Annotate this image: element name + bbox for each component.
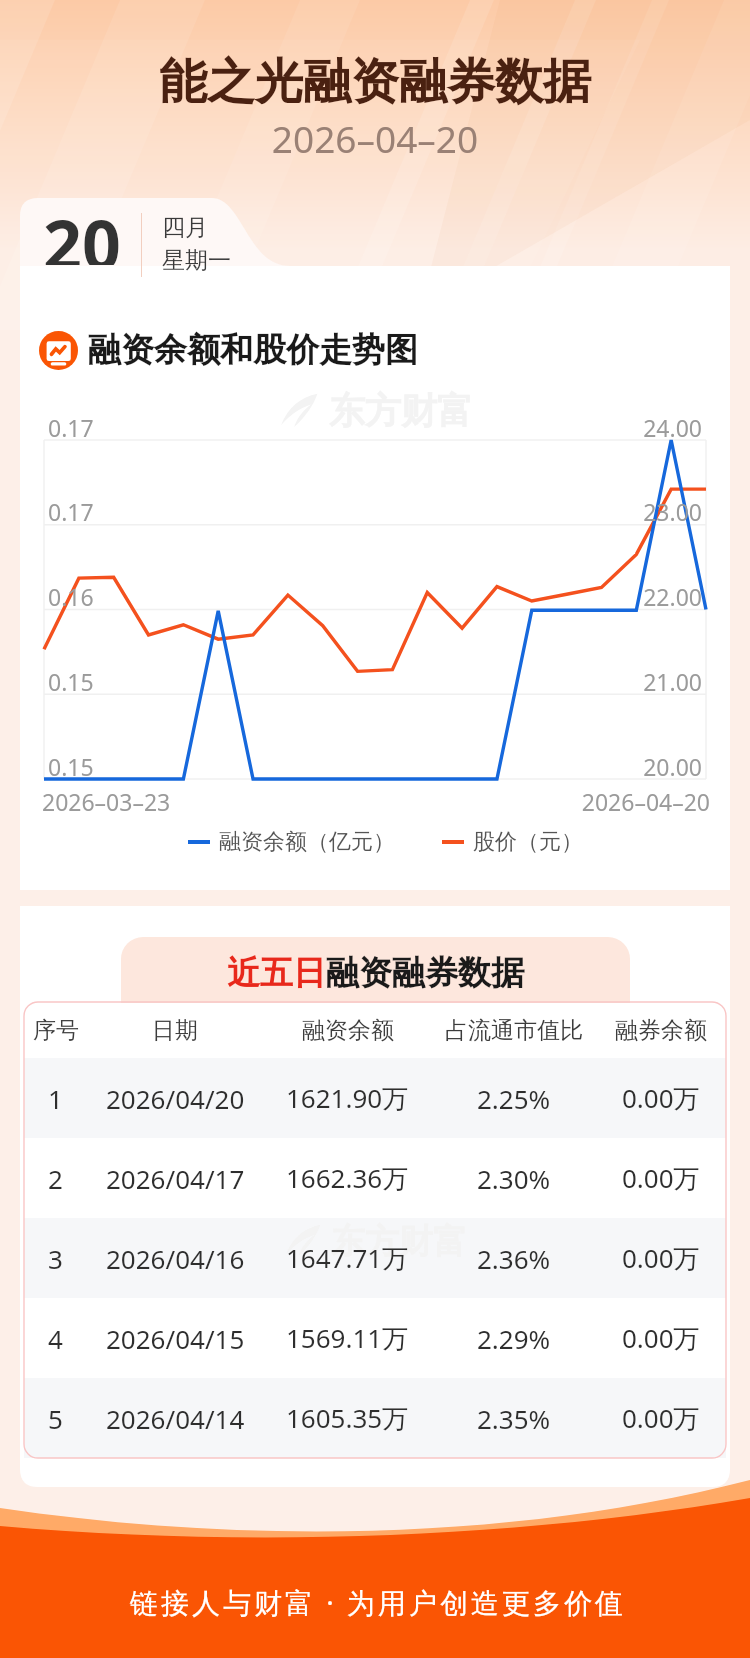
staticText: 1647.71万 <box>286 1240 409 1276</box>
staticText: 2.25% <box>477 1081 551 1116</box>
staticText: 2026/04/17 <box>106 1161 245 1196</box>
staticText: 2.30% <box>477 1161 551 1196</box>
staticText: 2026/04/14 <box>106 1401 245 1436</box>
staticText: 星期一 <box>162 246 231 275</box>
staticText: 0.15 <box>48 666 94 697</box>
staticText: 1569.11万 <box>286 1320 409 1356</box>
staticText: 0.00万 <box>622 1240 700 1276</box>
staticText: 2026/04/16 <box>106 1241 245 1276</box>
staticText: 4 <box>48 1321 63 1356</box>
staticText: 0.17 <box>48 496 94 527</box>
staticText: 融券余额 <box>615 1016 707 1045</box>
staticText: 2.29% <box>477 1321 551 1356</box>
staticText: 5 <box>48 1401 63 1436</box>
staticText: 20 <box>43 197 121 265</box>
staticText: 1605.35万 <box>286 1400 409 1436</box>
staticText: 1 <box>48 1081 63 1116</box>
button[interactable]: 5 <box>24 1378 726 1458</box>
staticText: 东方财富 <box>329 388 473 433</box>
other: 走势图 <box>39 331 78 370</box>
staticText: 1621.90万 <box>286 1080 409 1116</box>
button[interactable]: 1 <box>24 1058 726 1138</box>
button[interactable]: 3 <box>24 1218 726 1298</box>
button[interactable]: 4 <box>24 1298 726 1378</box>
staticText: 四月 <box>162 213 208 242</box>
staticText: 0.00万 <box>622 1160 700 1196</box>
staticText: 2 <box>48 1161 63 1196</box>
staticText: 24.00 <box>570 412 702 443</box>
staticText: 1662.36万 <box>286 1160 409 1196</box>
staticText: 近五日 <box>227 952 326 994</box>
staticText: 股价（元） <box>473 828 583 856</box>
staticText: 东方财富 <box>331 1220 467 1263</box>
button[interactable]: 近五日 <box>0 952 750 994</box>
staticText: 3 <box>48 1241 63 1276</box>
staticText: 2.35% <box>477 1401 551 1436</box>
staticText: 序号 <box>33 1016 79 1045</box>
staticText: 融资余额（亿元） <box>219 828 395 856</box>
staticText: 能之光融资融券数据 <box>0 52 750 112</box>
staticText: 0.15 <box>48 751 94 782</box>
staticText: 2.36% <box>477 1241 551 1276</box>
staticText: 22.00 <box>570 581 702 612</box>
staticText: 融资余额和股价走势图 <box>88 329 418 371</box>
button[interactable]: 2 <box>24 1138 726 1218</box>
staticText: 融资融券数据 <box>326 952 524 994</box>
staticText: 日期 <box>152 1016 198 1045</box>
staticText: 23.00 <box>570 496 702 527</box>
staticText: 21.00 <box>570 666 702 697</box>
staticText: 2026–04–20 <box>0 113 750 163</box>
staticText: 20.00 <box>570 751 702 782</box>
staticText: 0.00万 <box>622 1320 700 1356</box>
staticText: 融资余额 <box>302 1016 394 1045</box>
staticText: 0.16 <box>48 581 94 612</box>
staticText: 2026–03–23 <box>42 786 171 817</box>
staticText: 0.00万 <box>622 1080 700 1116</box>
staticText: 2026/04/15 <box>106 1321 245 1356</box>
staticText: 2026/04/20 <box>106 1081 245 1116</box>
staticText: 0.00万 <box>622 1400 700 1436</box>
staticText: 链接人与财富 · 为用户创造更多价值 <box>3 1583 750 1621</box>
staticText: 占流通市值比 <box>445 1016 583 1045</box>
button[interactable]: 走势图 <box>39 329 418 371</box>
button[interactable]: 20 <box>20 198 290 266</box>
staticText: 0.17 <box>48 412 94 443</box>
staticText: 2026–04–20 <box>568 786 710 817</box>
